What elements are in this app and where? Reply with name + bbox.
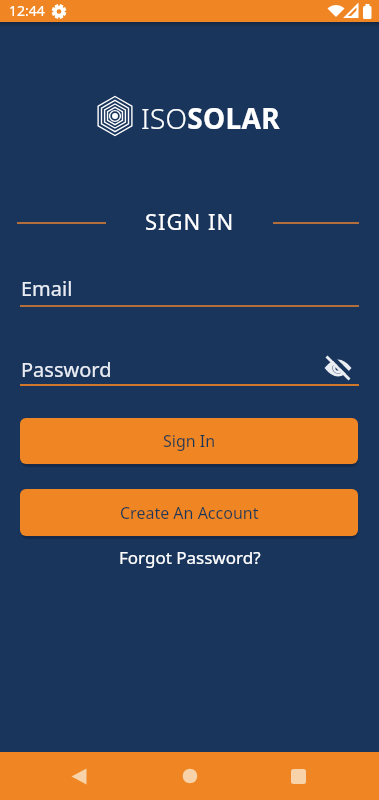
button[interactable]	[322, 352, 356, 384]
button[interactable]	[58, 762, 98, 790]
button[interactable]	[170, 762, 210, 790]
button[interactable]: Create An Account	[20, 489, 358, 536]
staticText: Create An Account	[120, 502, 259, 524]
staticText: 12:44	[9, 1, 45, 20]
button[interactable]	[278, 762, 318, 790]
staticText: Forgot Password?	[119, 546, 261, 569]
staticText: SIGN IN	[145, 206, 235, 236]
staticText: Email	[21, 275, 73, 302]
staticText: ISOSOLAR	[141, 99, 280, 137]
staticText: Sign In	[163, 430, 216, 452]
staticText: Password	[21, 356, 112, 383]
button[interactable]: Password	[20, 350, 359, 387]
button[interactable]: Sign In	[20, 418, 358, 464]
button[interactable]: Email	[20, 272, 359, 308]
button[interactable]: Forgot Password?	[119, 546, 261, 569]
